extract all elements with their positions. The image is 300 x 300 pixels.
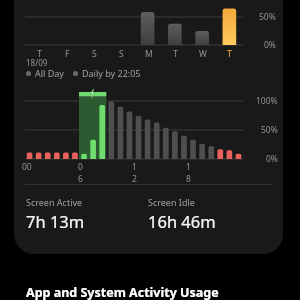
button[interactable]: All Day xyxy=(26,67,283,79)
button[interactable]: 100% xyxy=(14,79,283,174)
staticText: S xyxy=(119,48,124,60)
staticText: 7h 13m xyxy=(26,210,85,232)
staticText: 100% xyxy=(256,95,278,107)
staticText: M xyxy=(145,48,153,60)
staticText: W xyxy=(199,48,207,60)
staticText: 0% xyxy=(264,39,276,51)
button[interactable]: 50% xyxy=(14,0,283,62)
button[interactable]: App and System Activity Usage xyxy=(0,283,300,300)
staticText: 00 xyxy=(22,161,32,173)
staticText: 50% xyxy=(261,124,278,136)
button[interactable]: Screen Idle xyxy=(148,196,271,232)
staticText: T xyxy=(173,48,178,60)
staticText: 16h 46m xyxy=(148,210,216,232)
staticText: All Day xyxy=(35,67,64,79)
staticText: 18 xyxy=(186,161,195,185)
staticText: Screen Idle xyxy=(148,196,195,208)
staticText: Daily by 22:05 xyxy=(82,67,141,79)
staticText: T xyxy=(37,48,42,60)
staticText: Screen Active xyxy=(26,196,83,208)
staticText: 0% xyxy=(266,153,278,165)
staticText: 06 xyxy=(78,161,87,185)
staticText: 18/09 xyxy=(26,57,48,68)
staticText: 12 xyxy=(132,161,141,185)
staticText: S xyxy=(92,48,97,60)
button[interactable]: 50% xyxy=(14,0,283,254)
staticText: App and System Activity Usage xyxy=(26,284,219,300)
staticText: T xyxy=(227,48,232,60)
staticText: F xyxy=(65,48,70,60)
button[interactable]: Screen Active xyxy=(26,196,148,232)
staticText: 50% xyxy=(259,11,276,23)
